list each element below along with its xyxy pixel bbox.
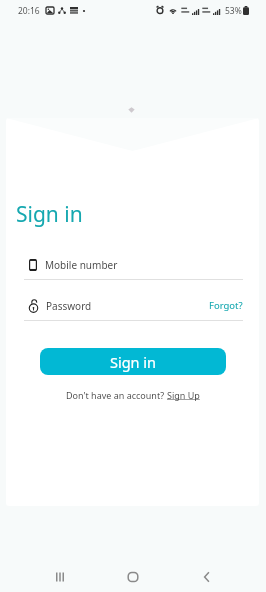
staticText: Sign in <box>110 352 157 372</box>
button[interactable]: Forgot? <box>209 299 243 312</box>
button[interactable]: Password <box>24 295 243 321</box>
staticText: Don't have an account? <box>66 389 167 401</box>
button[interactable]: Mobile number <box>24 254 243 280</box>
staticText: Mobile number <box>45 258 118 272</box>
button[interactable]: Back <box>191 566 223 588</box>
button[interactable]: Sign Up <box>167 389 200 401</box>
button[interactable]: Recents <box>44 566 76 588</box>
staticText: Password <box>46 299 92 313</box>
staticText: 20:16 <box>18 5 40 17</box>
staticText: Sign in <box>16 200 83 229</box>
staticText: 53% <box>225 5 242 17</box>
button[interactable]: Sign in <box>40 348 226 375</box>
button[interactable]: Home <box>117 566 149 588</box>
